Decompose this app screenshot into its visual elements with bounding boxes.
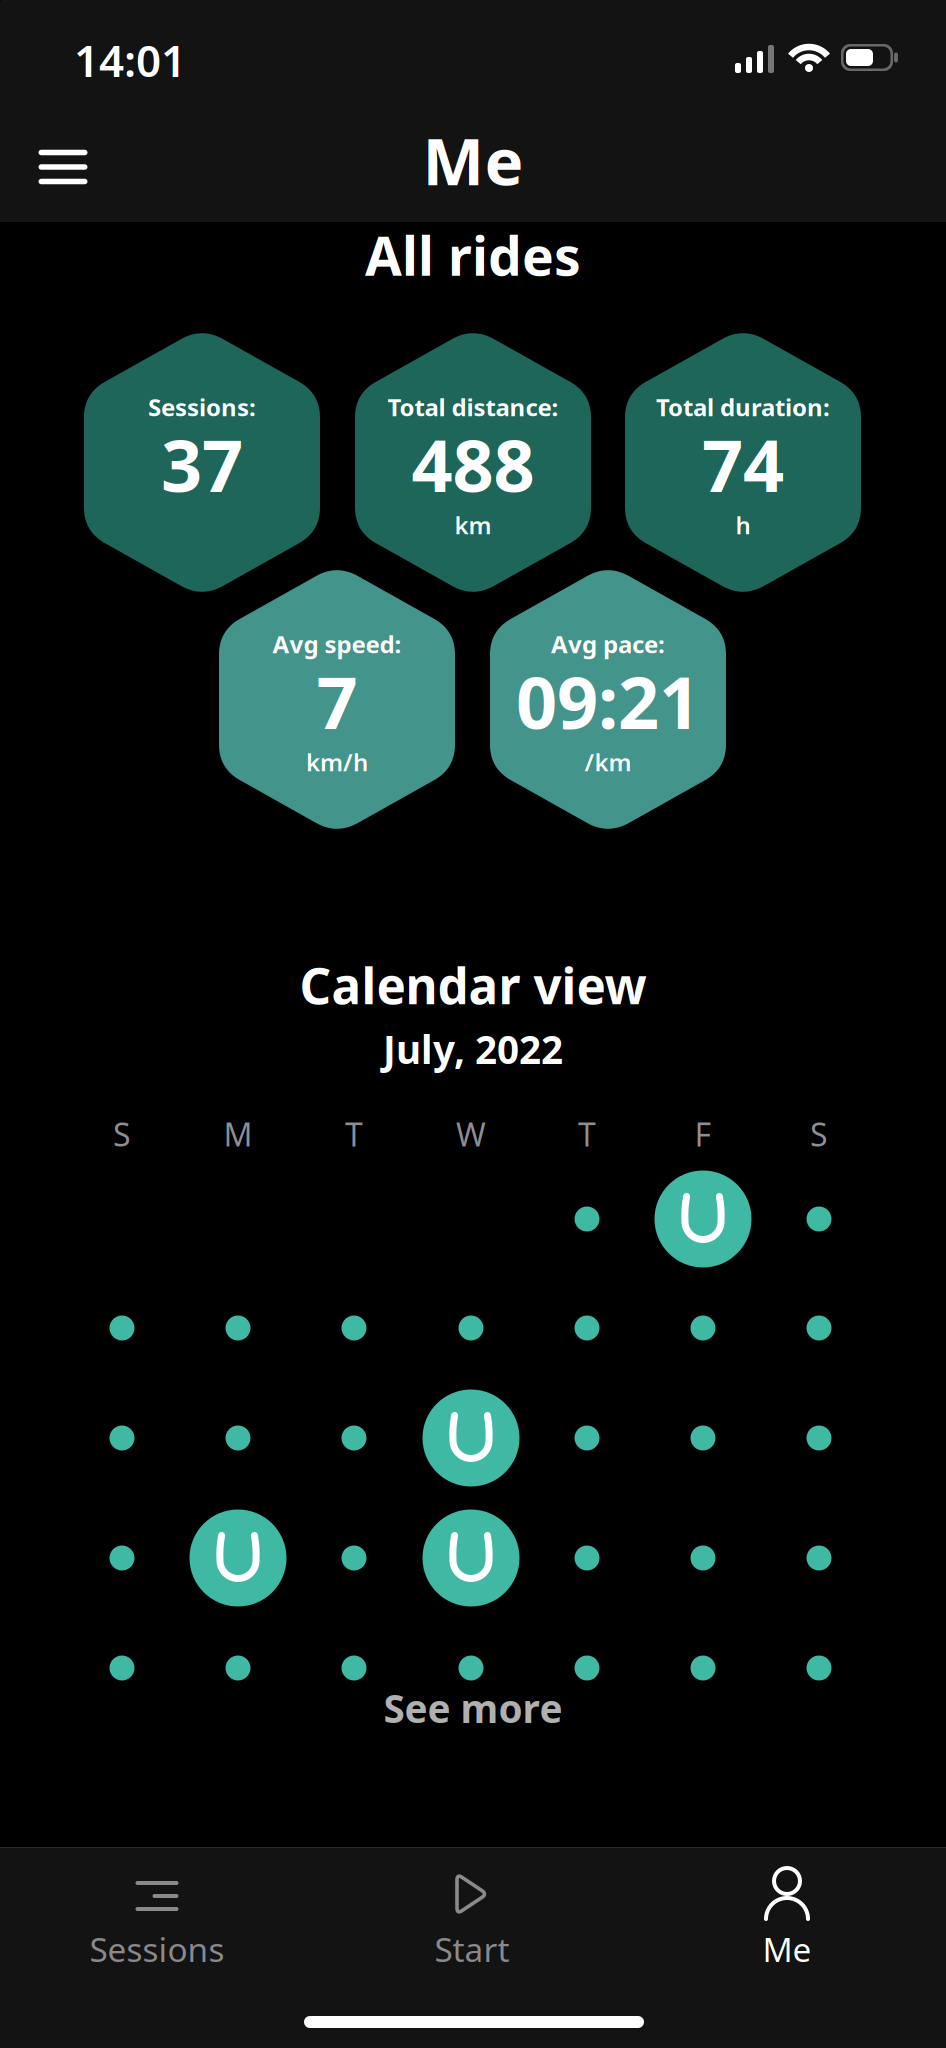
staticText: July, 2022 [383, 1023, 563, 1075]
staticText: 37 [161, 416, 243, 512]
staticText: Me [762, 1927, 811, 1971]
staticText: Sessions: [148, 391, 256, 423]
staticText: S [113, 1113, 131, 1155]
staticText: Avg pace: [551, 628, 665, 660]
staticText: 09:21 [516, 653, 700, 749]
button[interactable]: Menu [10, 121, 116, 213]
staticText: M [223, 1113, 252, 1155]
button[interactable]: Sessions [7, 1851, 307, 1971]
staticText: 488 [411, 416, 534, 512]
staticText: Avg speed: [272, 628, 401, 660]
staticText: 7 [316, 653, 357, 749]
staticText: 74 [702, 416, 784, 512]
staticText: Start [434, 1927, 509, 1971]
button[interactable]: See more [343, 1682, 603, 1734]
staticText: Total duration: [656, 391, 830, 423]
staticText: See more [383, 1682, 562, 1734]
staticText: 14:01 [74, 31, 186, 89]
staticText: All rides [365, 220, 581, 290]
staticText: T [578, 1113, 596, 1155]
staticText: Me [422, 117, 523, 203]
staticText: F [694, 1113, 711, 1155]
staticText: Calendar view [299, 952, 646, 1018]
staticText: Sessions [89, 1927, 224, 1971]
staticText: km/h [306, 746, 368, 778]
button[interactable]: Me [637, 1851, 937, 1971]
staticText: W [456, 1113, 486, 1155]
staticText: Total distance: [387, 391, 558, 423]
staticText: h [735, 509, 750, 541]
staticText: km [454, 509, 491, 541]
staticText: S [810, 1113, 828, 1155]
button[interactable]: Start [322, 1851, 622, 1971]
staticText: T [345, 1113, 363, 1155]
staticText: /km [584, 746, 631, 778]
